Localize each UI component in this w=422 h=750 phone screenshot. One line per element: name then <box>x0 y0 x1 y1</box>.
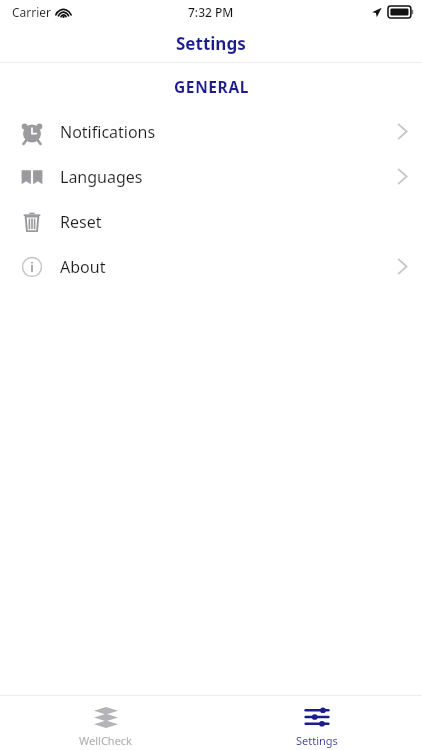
staticText: GENERAL <box>174 76 249 97</box>
staticText: Carrier <box>12 4 52 20</box>
button[interactable]: Reset <box>0 199 422 244</box>
button[interactable]: Languages <box>0 154 422 199</box>
button[interactable]: WellCheck <box>0 696 211 750</box>
staticText: Reset <box>60 211 102 233</box>
button[interactable]: About <box>0 244 422 289</box>
other: Settings <box>302 704 332 730</box>
staticText: WellCheck <box>79 733 132 748</box>
other: WellCheck <box>91 704 121 730</box>
staticText: Languages <box>60 166 143 188</box>
button[interactable]: Settings <box>211 696 422 750</box>
staticText: Notifications <box>60 121 156 143</box>
button[interactable]: Notifications <box>0 109 422 154</box>
staticText: About <box>60 256 106 278</box>
staticText: 7:32 PM <box>188 4 234 20</box>
staticText: Settings <box>296 733 338 748</box>
staticText: Settings <box>176 32 246 55</box>
